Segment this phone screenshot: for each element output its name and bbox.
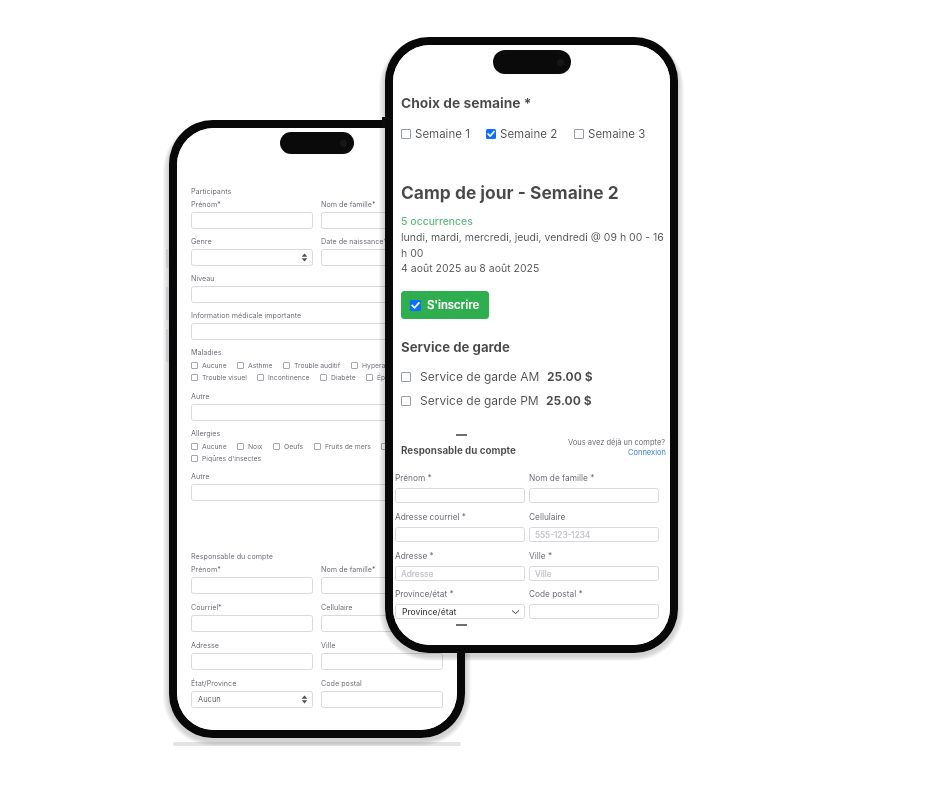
- staticText: Province/état: [402, 607, 457, 617]
- staticText: 5 occurrences: [401, 215, 473, 228]
- button[interactable]: Ville: [529, 566, 659, 581]
- button[interactable]: [395, 527, 525, 542]
- staticText: Aucune: [202, 442, 227, 450]
- button[interactable]: Case cochée: [486, 129, 496, 139]
- button[interactable]: Case cochée: [486, 127, 558, 141]
- button[interactable]: 555-123-1234: [529, 527, 659, 542]
- button[interactable]: Aucune: [191, 442, 227, 450]
- staticText: Service de garde: [401, 339, 510, 355]
- staticText: Service de garde AM: [420, 369, 540, 384]
- staticText: Asthme: [248, 361, 273, 369]
- button[interactable]: [321, 212, 443, 229]
- staticText: Aucun: [198, 695, 221, 704]
- button[interactable]: Diabète: [320, 373, 356, 381]
- staticText: Épilepsie: [377, 373, 406, 381]
- button[interactable]: Asthme: [237, 361, 273, 369]
- staticText: Genre: [191, 237, 212, 246]
- staticText: Semaine 1: [415, 127, 470, 141]
- button[interactable]: Adresse: [395, 566, 525, 581]
- button[interactable]: Case à cocher: [401, 396, 411, 406]
- button[interactable]: Case cochée: [410, 300, 421, 311]
- staticText: Lait: [392, 442, 404, 450]
- staticText: Date de naissance*: [321, 237, 388, 246]
- button[interactable]: [191, 577, 313, 594]
- staticText: Piqûres d'insectes: [202, 454, 262, 462]
- button[interactable]: Noix: [237, 442, 263, 450]
- staticText: Prénom*: [191, 200, 221, 209]
- staticText: Niveau: [191, 274, 215, 283]
- button[interactable]: Case à cocher: [401, 372, 411, 382]
- staticText: Semaine 2: [500, 127, 558, 141]
- button[interactable]: Fruits de mers: [314, 442, 371, 450]
- staticText: Autre: [191, 472, 210, 481]
- staticText: Maladies: [191, 348, 222, 357]
- button[interactable]: Oeufs: [273, 442, 304, 450]
- button[interactable]: [191, 653, 313, 670]
- staticText: Diabète: [331, 373, 356, 381]
- staticText: Adresse: [401, 569, 434, 579]
- button[interactable]: [321, 577, 443, 594]
- staticText: Semaine 3: [588, 127, 646, 141]
- button[interactable]: [191, 404, 443, 421]
- button[interactable]: Piqûres d'insectes: [191, 454, 262, 462]
- button[interactable]: [191, 484, 443, 501]
- button[interactable]: Case cochée: [401, 291, 489, 319]
- button[interactable]: Case à cocher: [401, 393, 592, 408]
- staticText: 555-123-1234: [535, 530, 591, 540]
- staticText: Trouble auditif: [294, 361, 341, 369]
- staticText: Information médicale importante: [191, 311, 302, 320]
- button[interactable]: Épilepsie: [366, 373, 406, 381]
- staticText: Courriel*: [191, 603, 222, 612]
- button[interactable]: [529, 604, 659, 619]
- staticText: Choix de semaine *: [401, 95, 532, 112]
- staticText: Cellulaire: [321, 603, 353, 612]
- staticText: Nom de famille*: [321, 200, 376, 209]
- button[interactable]: [321, 691, 443, 708]
- staticText: Ville *: [529, 551, 553, 561]
- button[interactable]: Sélectionner: [191, 249, 313, 266]
- button[interactable]: [191, 615, 313, 632]
- staticText: Cellulaire: [529, 512, 566, 522]
- staticText: Camp de jour - Semaine 2: [401, 182, 619, 203]
- button[interactable]: Province/état: [395, 604, 525, 619]
- button[interactable]: Trouble auditif: [283, 361, 341, 369]
- staticText: Nom de famille *: [529, 473, 595, 483]
- staticText: Responsable du compte: [401, 445, 516, 457]
- staticText: 4 août 2025 au 8 août 2025: [401, 262, 540, 275]
- button[interactable]: Trouble visuel: [191, 373, 247, 381]
- button[interactable]: [191, 323, 443, 340]
- staticText: S'inscrire: [427, 298, 480, 312]
- button[interactable]: [321, 615, 443, 632]
- button[interactable]: Case à cocher: [401, 369, 593, 384]
- staticText: Province/état *: [395, 589, 454, 599]
- staticText: Nom de famille*: [321, 565, 376, 574]
- staticText: 25.00 $: [547, 369, 593, 384]
- staticText: Prénom*: [191, 565, 221, 574]
- button[interactable]: [529, 488, 659, 503]
- staticText: Allergies: [191, 429, 221, 438]
- button[interactable]: Case à cocher: [401, 127, 470, 141]
- button[interactable]: Case à cocher: [574, 129, 584, 139]
- button[interactable]: [191, 212, 313, 229]
- button[interactable]: [321, 249, 443, 266]
- other: Sélectionner: [301, 694, 308, 705]
- staticText: Autre: [191, 392, 210, 401]
- button[interactable]: [191, 286, 443, 303]
- staticText: Adresse courriel *: [395, 512, 467, 522]
- staticText: Participants: [191, 187, 232, 196]
- button[interactable]: Aucun: [191, 691, 313, 708]
- button[interactable]: [395, 488, 525, 503]
- button[interactable]: Case à cocher: [401, 129, 411, 139]
- other: Ouvrir la liste: [512, 610, 519, 614]
- button[interactable]: Connexion: [628, 448, 666, 457]
- button[interactable]: Incontinence: [257, 373, 310, 381]
- button[interactable]: Lait: [381, 442, 404, 450]
- staticText: Trouble visuel: [202, 373, 247, 381]
- staticText: Vous avez déjà un compte?: [568, 438, 666, 447]
- button[interactable]: [321, 653, 443, 670]
- staticText: Incontinence: [268, 373, 310, 381]
- button[interactable]: Case à cocher: [574, 127, 646, 141]
- button[interactable]: Aucune: [191, 361, 227, 369]
- staticText: lundi, mardi, mercredi, jeudi, vendredi …: [401, 231, 667, 259]
- button[interactable]: Hyperactivité: [351, 361, 405, 369]
